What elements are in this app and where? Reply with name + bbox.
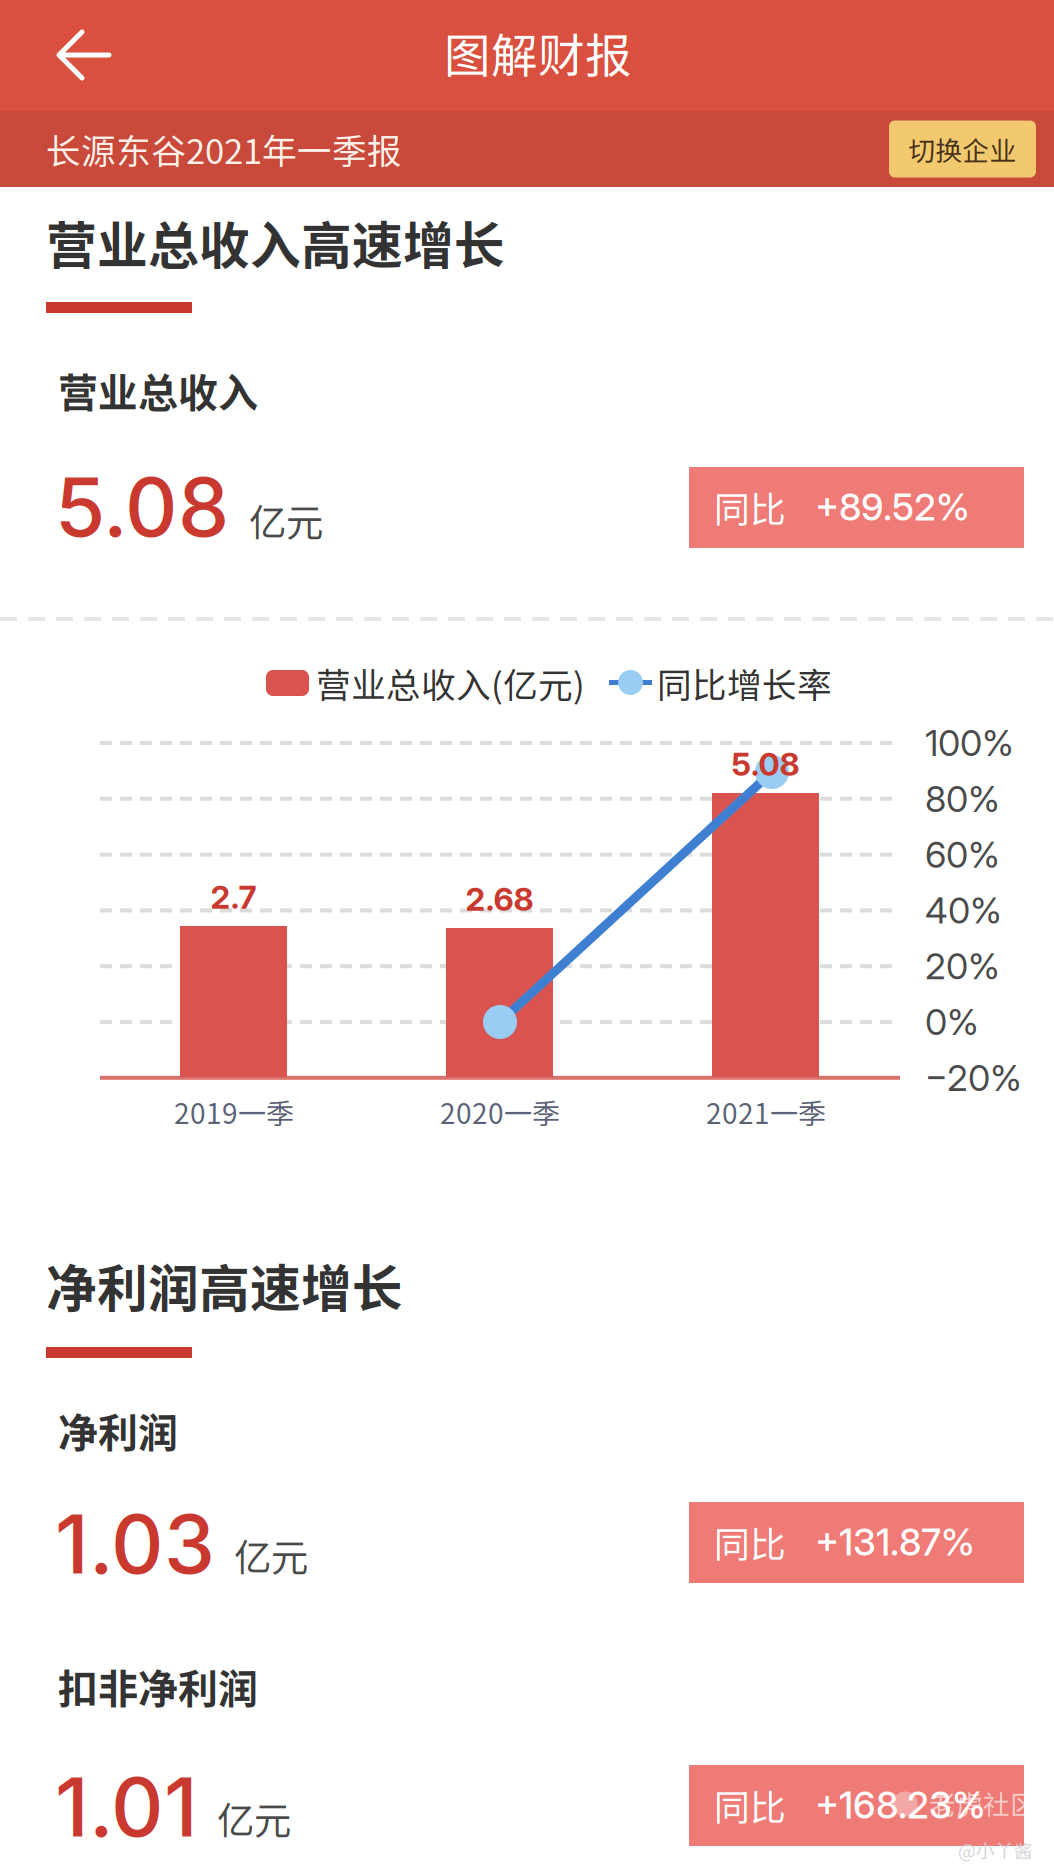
staticText: −20% (925, 1056, 1022, 1100)
button[interactable]: 同比 (689, 1765, 1024, 1846)
staticText: 2021一季 (706, 1091, 826, 1132)
staticText: 净利润 (58, 1401, 178, 1459)
staticText: 同比增长率 (657, 658, 832, 708)
staticText: 5.08 (731, 745, 799, 783)
staticText: 扣非净利润 (58, 1657, 258, 1715)
staticText: 净利润高速增长 (46, 1248, 403, 1322)
staticText: @小丫酱 (958, 1836, 1033, 1863)
staticText: 营业总收入 (58, 361, 258, 419)
staticText: 同比 (714, 481, 786, 533)
staticText: 亿元 (234, 1528, 308, 1582)
staticText: 切换企业 (908, 130, 1016, 168)
button[interactable]: 切换企业 (889, 120, 1036, 177)
staticText: 2.68 (465, 880, 533, 918)
button[interactable]: 同比 (689, 467, 1024, 548)
staticText: 同比 (714, 1516, 786, 1568)
staticText: 5.08 (55, 458, 229, 556)
staticText: +89.52% (815, 484, 970, 530)
staticText: 80% (925, 777, 1000, 821)
staticText: 0% (925, 1000, 979, 1044)
button[interactable]: 返回 (0, 0, 150, 111)
staticText: 营业总收入高速增长 (46, 205, 505, 279)
staticText: +168.23% (815, 1782, 986, 1828)
staticText: 2.7 (210, 878, 256, 916)
staticText: 长源东谷2021年一季报 (46, 124, 402, 174)
staticText: 100% (925, 721, 1014, 765)
staticText: 营业总收入(亿元) (316, 658, 585, 708)
staticText: 亿元 (249, 493, 323, 547)
staticText: 亿元 (217, 1791, 291, 1845)
staticText: 40% (925, 889, 1002, 932)
staticText: 老虎社区 (929, 1784, 1037, 1822)
staticText: 20% (925, 944, 1000, 988)
staticText: 图解财报 (444, 19, 632, 86)
staticText: +131.87% (815, 1519, 975, 1565)
staticText: 1.03 (55, 1495, 215, 1593)
button[interactable]: 同比 (689, 1502, 1024, 1583)
staticText: 2019一季 (174, 1091, 294, 1132)
staticText: 同比 (714, 1779, 786, 1831)
staticText: 1.01 (55, 1758, 198, 1856)
staticText: 60% (925, 833, 1000, 876)
staticText: 2020一季 (440, 1091, 560, 1132)
